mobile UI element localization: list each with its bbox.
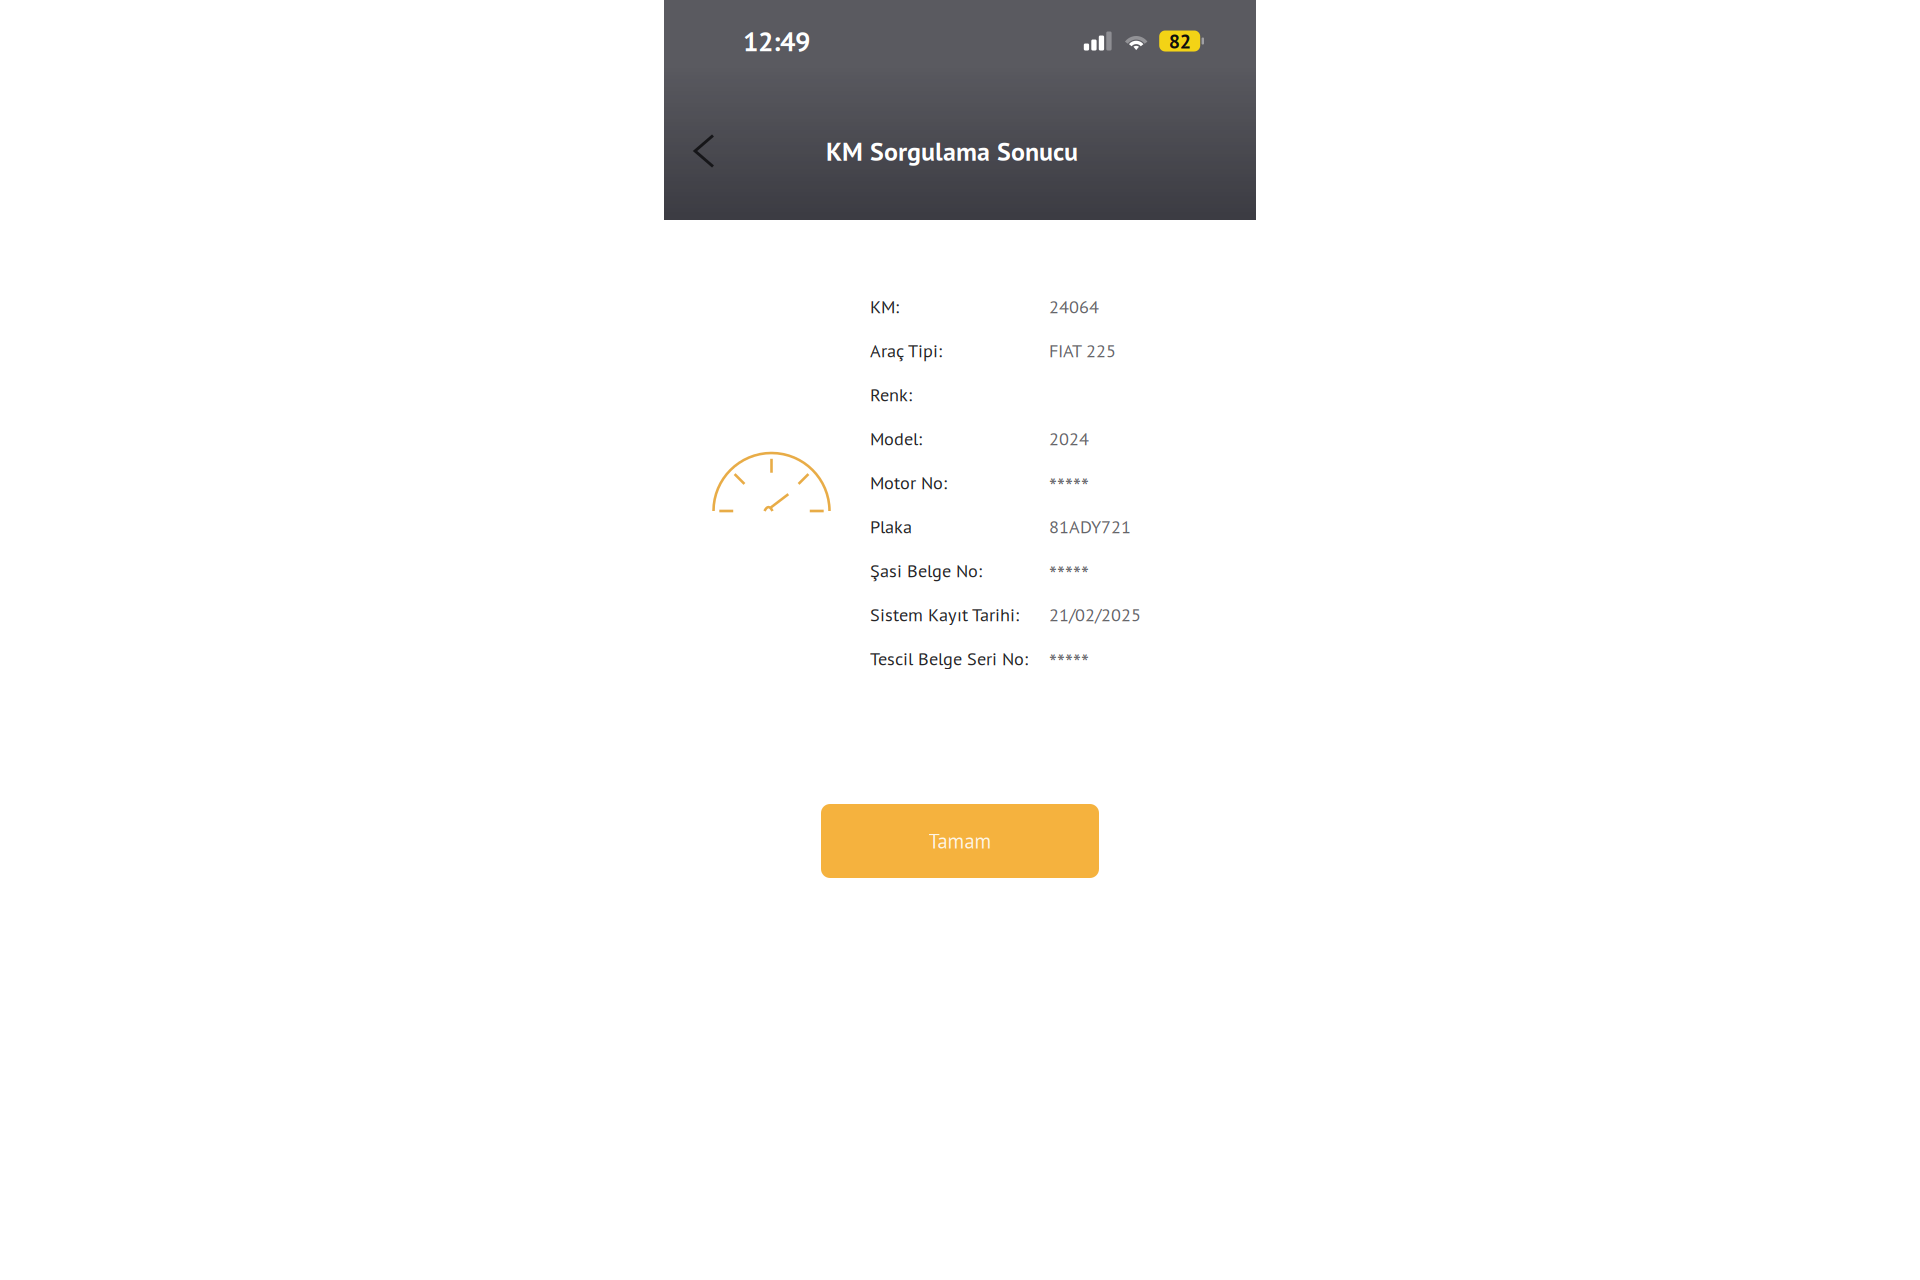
button[interactable]: Back — [678, 116, 730, 186]
staticText: Tescil Belge Seri No: — [870, 647, 1028, 670]
staticText: FIAT 225 — [1049, 339, 1116, 362]
staticText: Araç Tipi: — [870, 339, 942, 362]
staticText: Plaka — [870, 515, 912, 538]
staticText: 24064 — [1049, 295, 1099, 318]
staticText: 21/02/2025 — [1049, 603, 1141, 626]
staticText: Renk: — [870, 383, 912, 406]
staticText: ***** — [1049, 648, 1089, 677]
staticText: Motor No: — [870, 471, 947, 494]
button[interactable]: Tamam — [821, 804, 1099, 878]
staticText: 2024 — [1049, 427, 1089, 450]
staticText: Model: — [870, 427, 922, 450]
staticText: Şasi Belge No: — [870, 559, 982, 582]
staticText: KM: — [870, 295, 899, 318]
staticText: ***** — [1049, 560, 1089, 589]
staticText: ***** — [1049, 472, 1089, 501]
staticText: 12:49 — [743, 23, 810, 59]
staticText: 82 — [1169, 28, 1191, 54]
staticText: Tamam — [928, 828, 991, 854]
staticText: Sistem Kayıt Tarihi: — [870, 603, 1019, 626]
staticText: 81ADY721 — [1049, 515, 1131, 538]
staticText: KM Sorgulama Sonucu — [826, 134, 1078, 168]
